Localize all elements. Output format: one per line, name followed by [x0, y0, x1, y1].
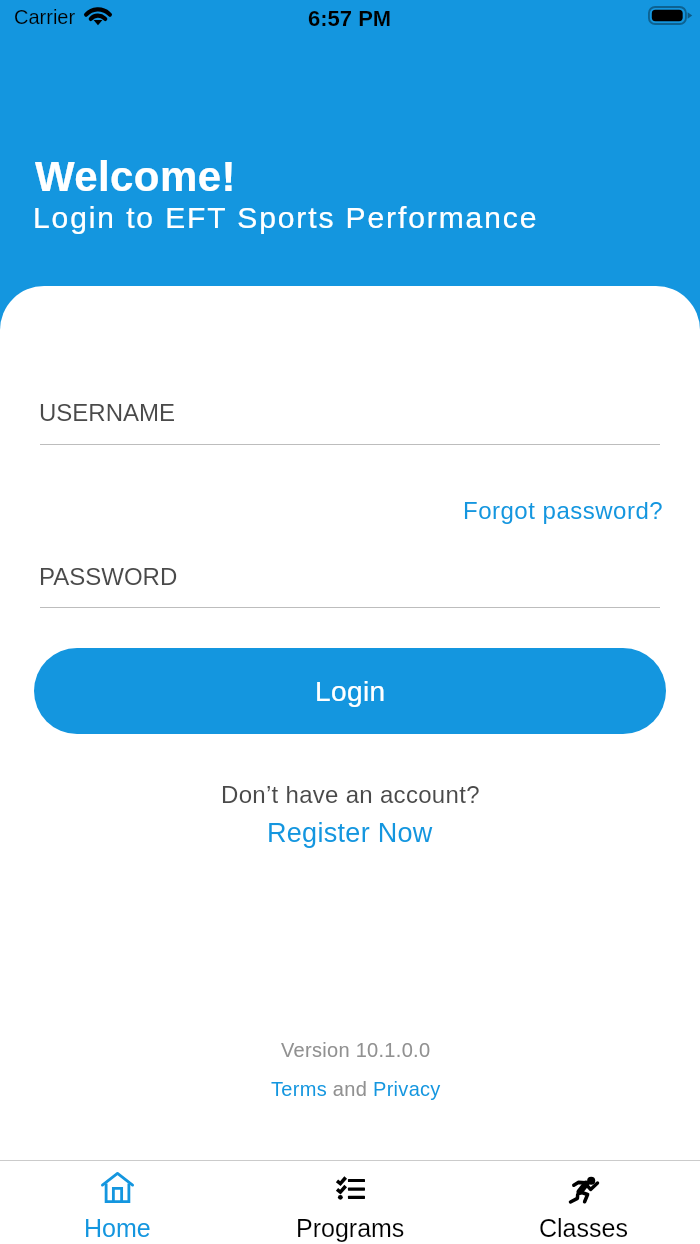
staticText: Carrier [14, 6, 76, 28]
button[interactable]: Home [0, 1161, 234, 1244]
button[interactable]: Register Now [247, 806, 453, 860]
staticText: Terms [271, 1078, 327, 1100]
staticText: Version 10.1.0.0 [281, 1039, 431, 1061]
staticText: 6:57 PM [308, 6, 392, 31]
button[interactable]: Classes [467, 1161, 700, 1244]
staticText: and [327, 1078, 373, 1100]
staticText: Programs [296, 1214, 405, 1242]
staticText: Register Now [267, 818, 433, 848]
staticText: Don’t have an account? [221, 781, 480, 808]
staticText: Welcome! [35, 153, 236, 200]
staticText: Privacy [373, 1078, 441, 1100]
button[interactable]: Login [34, 648, 666, 734]
staticText: Login [315, 676, 386, 707]
staticText: PASSWORD [39, 563, 178, 590]
staticText: Login to EFT Sports Performance [33, 201, 539, 235]
button[interactable]: Programs [234, 1161, 467, 1244]
staticText: Forgot password? [463, 497, 664, 524]
staticText: Classes [539, 1214, 628, 1242]
button[interactable]: PASSWORD [40, 554, 660, 608]
button[interactable]: Forgot password? [451, 485, 676, 536]
staticText: USERNAME [39, 399, 176, 426]
button[interactable]: USERNAME [40, 390, 660, 445]
staticText: Home [84, 1214, 151, 1242]
button[interactable]: Privacy [373, 1070, 441, 1108]
other: Battery full [648, 6, 690, 25]
other: Wi-Fi signal [85, 5, 111, 25]
button[interactable]: Terms [271, 1070, 327, 1108]
